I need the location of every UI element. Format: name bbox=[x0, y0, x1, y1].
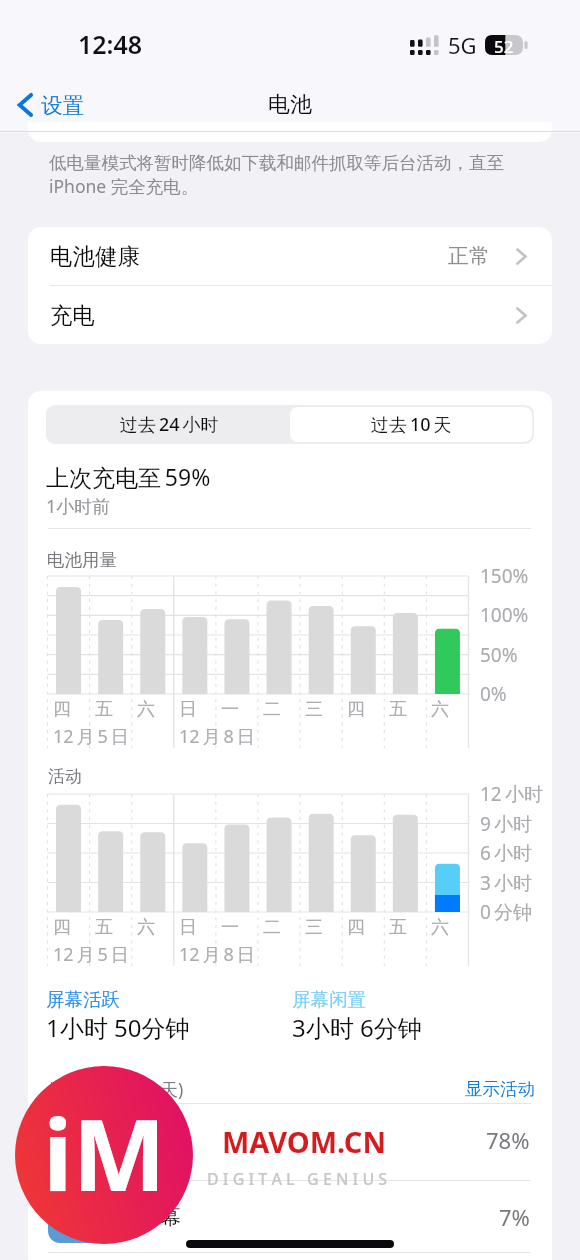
staticText: 四 bbox=[347, 916, 365, 939]
staticText: 四 bbox=[347, 698, 365, 721]
staticText: 六 bbox=[137, 916, 155, 939]
button[interactable]: 设置 bbox=[12, 87, 88, 123]
staticText: 过去 10 天 bbox=[371, 412, 452, 437]
staticText: 六 bbox=[137, 698, 155, 721]
staticText: iPhone 完全充电。 bbox=[49, 174, 199, 198]
staticText: iM bbox=[43, 1085, 166, 1220]
staticText: 设置 bbox=[41, 92, 84, 119]
staticText: 五 bbox=[389, 916, 407, 939]
staticText: 日 bbox=[179, 916, 197, 939]
button[interactable]: 过去 10 天 bbox=[290, 407, 532, 442]
staticText: 12 小时 bbox=[480, 781, 543, 807]
staticText: 0% bbox=[480, 681, 507, 707]
staticText: 电池用量 bbox=[47, 549, 117, 571]
staticText: 后台活动 bbox=[118, 1143, 188, 1165]
staticText: 12 月 8 日 bbox=[179, 724, 255, 749]
staticText: 3小时 6分钟 bbox=[292, 1011, 422, 1044]
staticText: 1小时 50分钟 bbox=[46, 1011, 190, 1044]
staticText: 五 bbox=[95, 916, 113, 939]
staticText: 50% bbox=[480, 642, 518, 668]
staticText: 12:48 bbox=[78, 27, 143, 61]
staticText: 电池健康 bbox=[50, 242, 140, 270]
staticText: 过去 24 小时 bbox=[120, 412, 219, 437]
button[interactable]: 电池健康 bbox=[28, 227, 552, 285]
staticText: 屏幕闲置 bbox=[292, 988, 366, 1011]
staticText: 按App用量 (今天) bbox=[48, 1077, 184, 1101]
staticText: 100% bbox=[480, 602, 529, 628]
staticText: 显示活动 bbox=[465, 1078, 535, 1100]
staticText: 主屏幕 bbox=[118, 1204, 181, 1230]
staticText: 微信 bbox=[118, 1114, 160, 1140]
staticText: 5G bbox=[448, 30, 477, 60]
staticText: 150% bbox=[480, 563, 529, 589]
staticText: 屏幕活跃 bbox=[46, 988, 120, 1011]
staticText: D I G I T A L G E N I U S bbox=[207, 1168, 388, 1190]
staticText: MAVOM.CN bbox=[222, 1122, 386, 1161]
staticText: 7% bbox=[499, 1202, 530, 1232]
staticText: 五 bbox=[389, 698, 407, 721]
staticText: 上次充电至 59% bbox=[46, 461, 211, 492]
button[interactable]: 显示活动 bbox=[461, 1076, 539, 1102]
staticText: 六 bbox=[431, 916, 449, 939]
staticText: 六 bbox=[431, 698, 449, 721]
staticText: 低电量模式将暂时降低如下载和邮件抓取等后台活动，直至 bbox=[49, 152, 504, 174]
button[interactable]: 主屏幕 bbox=[28, 1181, 552, 1252]
staticText: 五 bbox=[95, 698, 113, 721]
staticText: 一 bbox=[221, 916, 239, 939]
staticText: 三 bbox=[305, 916, 323, 939]
staticText: 三 bbox=[305, 698, 323, 721]
staticText: 52 bbox=[494, 35, 514, 55]
staticText: 一 bbox=[221, 698, 239, 721]
staticText: 正常 bbox=[448, 243, 490, 269]
staticText: 电池 bbox=[268, 91, 312, 119]
staticText: 12 月 8 日 bbox=[179, 942, 255, 967]
staticText: 四 bbox=[53, 698, 71, 721]
staticText: 二 bbox=[263, 916, 281, 939]
staticText: 78% bbox=[486, 1125, 530, 1155]
staticText: 12 月 5 日 bbox=[53, 724, 129, 749]
staticText: 二 bbox=[263, 698, 281, 721]
staticText: 6 小时 bbox=[480, 840, 533, 866]
button[interactable]: 充电 bbox=[28, 286, 552, 344]
staticText: 充电 bbox=[50, 301, 95, 329]
staticText: 四 bbox=[53, 916, 71, 939]
staticText: 3 小时 bbox=[480, 870, 533, 896]
staticText: 1小时前 bbox=[46, 494, 111, 519]
staticText: 12 月 5 日 bbox=[53, 942, 129, 967]
staticText: 活动 bbox=[48, 766, 82, 787]
staticText: 9 小时 bbox=[480, 811, 533, 837]
staticText: 日 bbox=[179, 698, 197, 721]
button[interactable]: 微信 bbox=[28, 1104, 552, 1175]
button[interactable]: 过去 24 小时 bbox=[48, 407, 290, 442]
staticText: 0 分钟 bbox=[480, 899, 533, 925]
